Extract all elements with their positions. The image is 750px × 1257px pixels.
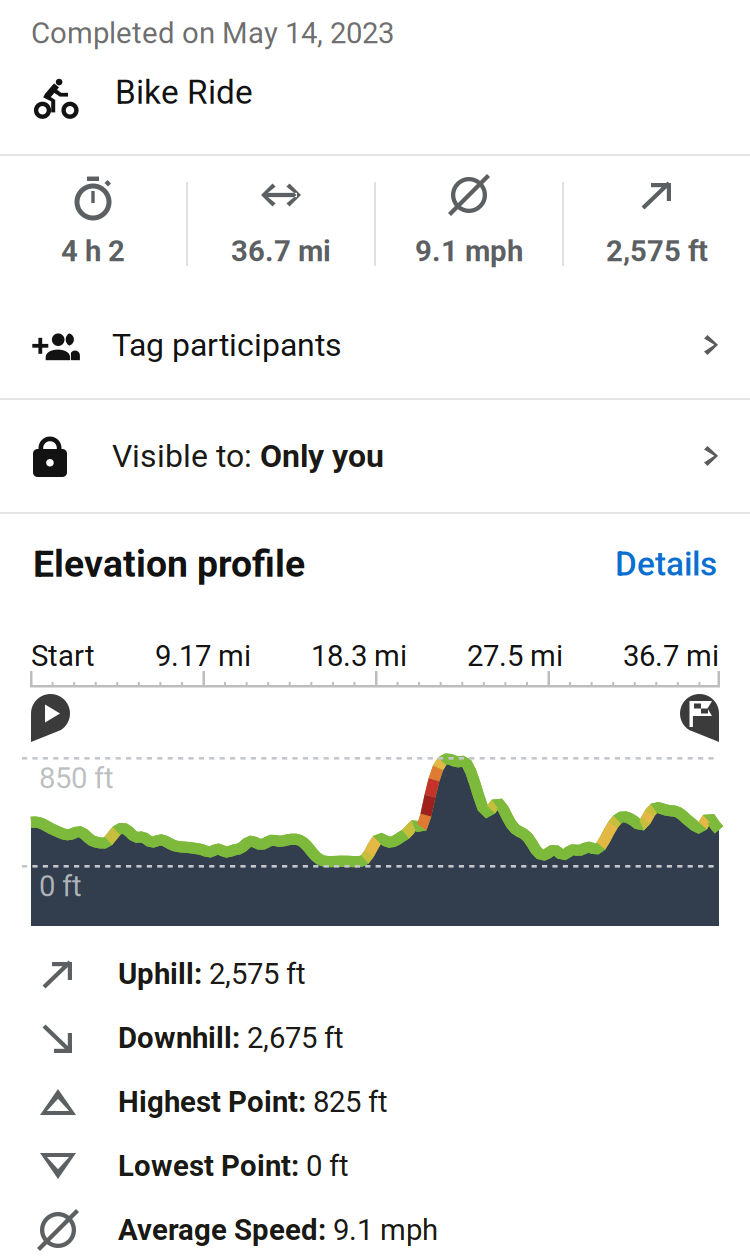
staticText: Visible to: Only you: [112, 438, 384, 474]
staticText: 18.3 mi: [311, 639, 407, 673]
staticText: Lowest Point: 0 ft: [118, 1149, 349, 1183]
staticText: Uphill: 2,575 ft: [118, 957, 306, 991]
staticText: Details: [615, 544, 717, 584]
button[interactable]: Visible to: Only you: [0, 400, 750, 512]
staticText: Highest Point: 825 ft: [118, 1085, 388, 1119]
staticText: 4 h 2: [61, 234, 125, 268]
staticText: Completed on May 14, 2023: [31, 16, 394, 50]
staticText: 36.7 mi: [623, 639, 719, 673]
staticText: Bike Ride: [115, 73, 253, 112]
staticText: Tag participants: [112, 326, 342, 364]
staticText: 2,575 ft: [606, 234, 708, 268]
staticText: Elevation profile: [33, 542, 305, 586]
staticText: Downhill: 2,675 ft: [118, 1021, 344, 1055]
staticText: 9.1 mph: [415, 234, 523, 268]
staticText: Average Speed: 9.1 mph: [118, 1213, 438, 1247]
staticText: 27.5 mi: [467, 639, 563, 673]
staticText: 850 ft: [39, 761, 114, 795]
staticText: 9.17 mi: [155, 639, 251, 673]
button[interactable]: Details: [615, 544, 717, 584]
staticText: 36.7 mi: [231, 234, 331, 268]
staticText: 0 ft: [39, 869, 82, 903]
button[interactable]: Tag participants: [0, 292, 750, 398]
staticText: Start: [31, 639, 95, 673]
